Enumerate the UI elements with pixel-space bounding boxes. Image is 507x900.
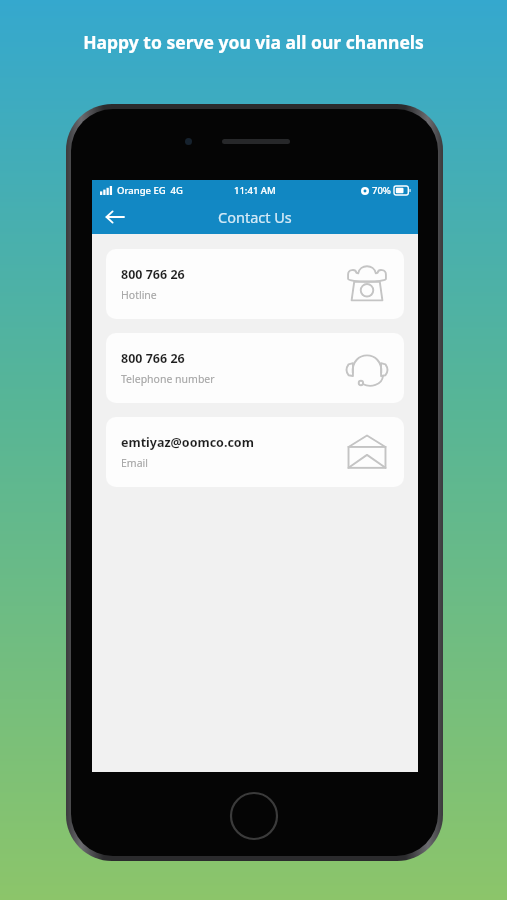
staticText: Hotline xyxy=(121,288,157,302)
button[interactable]: emtiyaz@oomco.com xyxy=(106,417,404,487)
staticText: Email xyxy=(121,456,148,470)
staticText: 800 766 26 xyxy=(121,350,185,367)
button[interactable]: 800 766 26 xyxy=(106,249,404,319)
staticText: emtiyaz@oomco.com xyxy=(121,434,254,451)
staticText: Telephone number xyxy=(121,372,215,386)
staticText: 800 766 26 xyxy=(121,266,185,283)
button[interactable]: Back xyxy=(92,200,136,234)
staticText: Contact Us xyxy=(218,207,292,227)
button[interactable]: 800 766 26 xyxy=(106,333,404,403)
staticText: Happy to serve you via all our channels xyxy=(83,30,424,54)
staticText: 11:41 AM xyxy=(234,184,276,197)
staticText: 70% xyxy=(372,184,391,197)
staticText: Orange EG 4G xyxy=(117,184,183,197)
